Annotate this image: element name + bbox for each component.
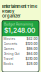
staticText: $120.00	[25, 42, 37, 46]
staticText: Budget Remaining	[4, 22, 33, 26]
staticText: $64.00	[26, 52, 37, 56]
staticText: $28.00	[26, 62, 37, 66]
staticText: Movies	[3, 37, 15, 41]
staticText: $310.00	[25, 57, 37, 61]
staticText: Books	[3, 62, 13, 66]
staticText: Games	[3, 47, 14, 51]
staticText: $42.00	[26, 37, 37, 41]
staticText: Dining Out	[3, 52, 19, 56]
staticText: Concerts	[3, 42, 17, 46]
staticText: Travel	[3, 57, 13, 61]
staticText: $86.00	[26, 47, 37, 51]
staticText: Organizer	[2, 14, 21, 18]
staticText: $1,248.00	[4, 26, 35, 34]
staticText: Entertainment Time Ready	[2, 4, 37, 14]
